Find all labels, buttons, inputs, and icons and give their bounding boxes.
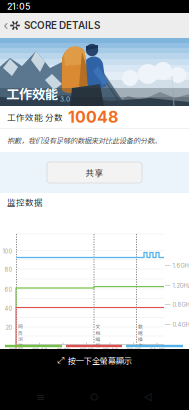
- button[interactable]: Back: [2, 13, 10, 38]
- button[interactable]: 共享: [47, 162, 142, 183]
- staticText: 辑: [95, 342, 100, 349]
- staticText: 编: [95, 336, 100, 343]
- staticText: 文: [95, 323, 100, 330]
- staticText: ○: [90, 391, 99, 403]
- staticText: 共享: [85, 166, 103, 179]
- staticText: 20: [5, 324, 12, 331]
- staticText: 工作效能: [6, 84, 58, 103]
- staticText: ‹: [3, 18, 8, 33]
- staticText: 数: [138, 323, 143, 330]
- staticText: 页: [18, 329, 23, 336]
- staticText: 作: [138, 342, 143, 349]
- staticText: — 1.6GHz: [164, 262, 189, 269]
- staticText: ◁: [144, 391, 153, 403]
- staticText: 按一下全螢幕顯示: [68, 354, 132, 366]
- staticText: 据: [138, 329, 143, 336]
- staticText: 04:00: [149, 346, 164, 353]
- staticText: 3.0: [60, 95, 70, 103]
- staticText: 工作效能 分数: [7, 111, 63, 123]
- staticText: — 1.2GHz: [164, 282, 189, 289]
- staticText: 览: [18, 342, 23, 349]
- staticText: 80: [4, 266, 12, 273]
- staticText: 02:40: [102, 346, 117, 353]
- staticText: 03:20: [126, 346, 140, 353]
- button[interactable]: Back: [135, 388, 161, 406]
- staticText: 网: [18, 323, 23, 330]
- staticText: — 0.4GHz: [164, 321, 189, 328]
- staticText: 01:20: [56, 346, 69, 353]
- staticText: 00:00: [9, 346, 23, 353]
- staticText: 100: [2, 248, 12, 255]
- button[interactable]: ⤢: [0, 349, 189, 372]
- staticText: SCORE DETAILS: [20, 19, 100, 31]
- staticText: 抱歉，我们没有足够的数据来对比此设备的分数。: [7, 135, 161, 145]
- button[interactable]: Home: [81, 388, 107, 406]
- staticText: ⤢: [57, 356, 64, 365]
- staticText: — 0.8GHz: [164, 301, 189, 308]
- staticText: 02:00: [79, 346, 93, 353]
- staticText: 40: [4, 305, 12, 312]
- staticText: 档: [95, 329, 100, 336]
- staticText: 60: [4, 286, 12, 293]
- staticText: 操: [138, 336, 143, 343]
- staticText: 00:40: [32, 346, 47, 353]
- staticText: 21:05: [7, 1, 30, 12]
- button[interactable]: Recent apps: [28, 388, 54, 406]
- staticText: 10048: [68, 107, 118, 127]
- staticText: 监控数据: [7, 196, 43, 208]
- staticText: 浏: [18, 336, 23, 343]
- staticText: ≡: [36, 391, 45, 403]
